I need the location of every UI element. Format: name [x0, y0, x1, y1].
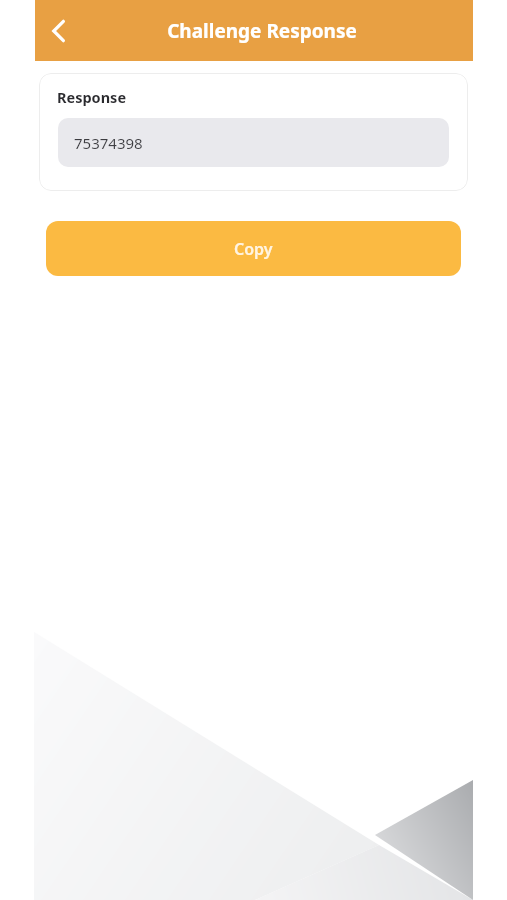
staticText: Response — [57, 87, 127, 107]
button[interactable]: Copy — [46, 221, 461, 276]
staticText: 75374398 — [74, 133, 143, 153]
staticText: Challenge Response — [167, 18, 357, 44]
button[interactable]: 75374398 — [58, 118, 449, 167]
button[interactable]: Back — [35, 7, 83, 55]
staticText: Copy — [234, 238, 273, 260]
